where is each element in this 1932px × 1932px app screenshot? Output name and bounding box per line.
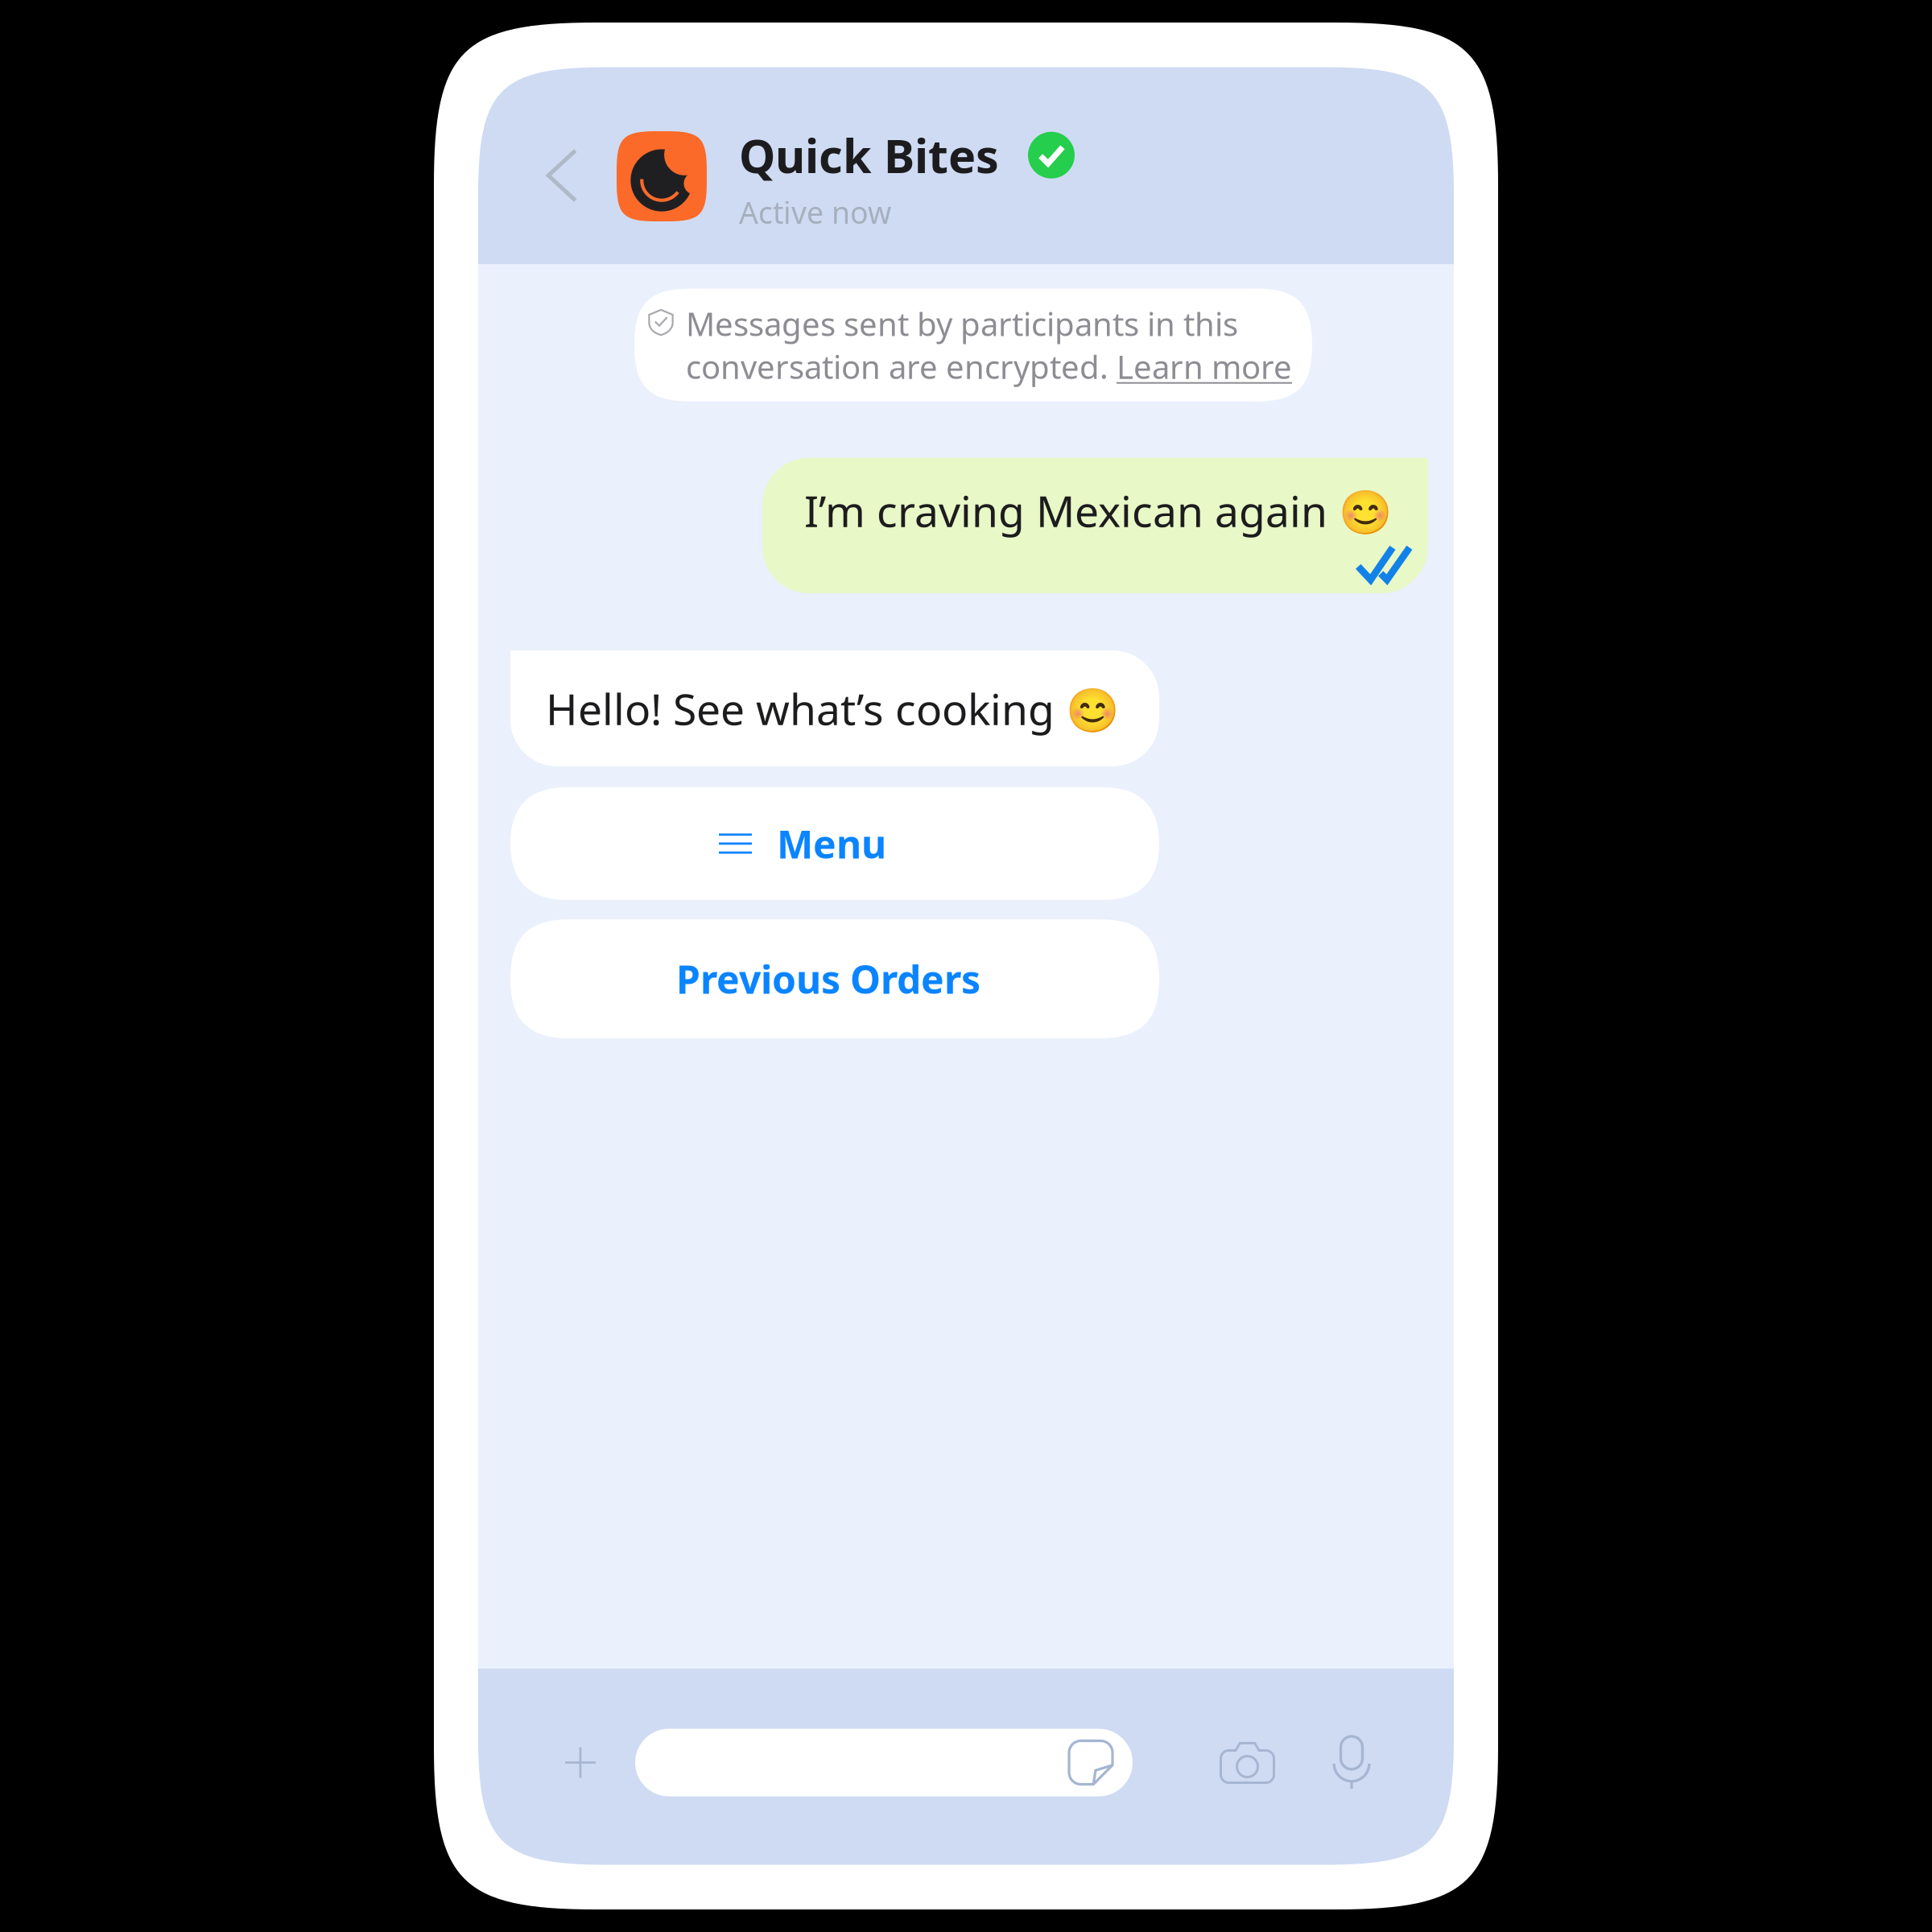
button[interactable]: Camera: [1195, 1664, 1299, 1861]
staticText: Quick Bites: [739, 124, 999, 186]
staticText: Previous Orders: [676, 953, 980, 1004]
button[interactable]: Messages sent by participants in this co…: [634, 289, 1312, 401]
button[interactable]: Previous Orders: [510, 919, 1159, 1038]
staticText: Hello! See what’s cooking 😊: [546, 680, 1119, 737]
staticText: Active now: [739, 192, 891, 232]
staticText: I’m craving Mexican again 😊: [804, 482, 1392, 539]
button[interactable]: Message: [635, 1729, 1133, 1796]
staticText: Menu: [777, 818, 886, 869]
button[interactable]: Voice message: [1299, 1664, 1404, 1861]
button[interactable]: Menu: [510, 787, 1159, 900]
button[interactable]: Attach: [535, 1664, 625, 1861]
button[interactable]: Quick Bites: [617, 67, 1454, 264]
button[interactable]: Back: [478, 67, 617, 264]
staticText: Messages sent by participants in this co…: [686, 302, 1292, 388]
